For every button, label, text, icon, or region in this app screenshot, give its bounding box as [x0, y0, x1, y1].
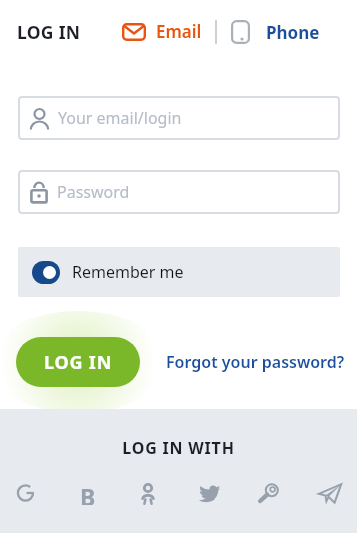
button[interactable]: Your email/login	[18, 96, 340, 140]
button[interactable]	[197, 481, 221, 505]
button[interactable]: Password	[18, 170, 340, 214]
button[interactable]	[15, 481, 39, 505]
staticText: Phone	[266, 21, 320, 44]
staticText: LOG IN WITH	[0, 437, 357, 459]
staticText: LOG IN	[44, 350, 113, 375]
button[interactable]	[32, 261, 60, 284]
button[interactable]: Forgot your password?	[166, 351, 345, 373]
button[interactable]: Email	[122, 20, 202, 43]
staticText: Password	[57, 181, 130, 203]
button[interactable]: Phone	[231, 20, 320, 44]
staticText: B	[80, 481, 96, 505]
button[interactable]	[257, 481, 281, 505]
staticText: Your email/login	[58, 107, 182, 129]
button[interactable]: B	[76, 481, 100, 505]
button[interactable]: Remember me	[18, 247, 340, 297]
staticText: Remember me	[72, 261, 184, 283]
button[interactable]: LOG IN	[16, 337, 140, 387]
button[interactable]	[136, 481, 160, 505]
staticText: LOG IN	[17, 20, 81, 44]
staticText: Email	[156, 20, 202, 43]
button[interactable]	[318, 481, 342, 505]
